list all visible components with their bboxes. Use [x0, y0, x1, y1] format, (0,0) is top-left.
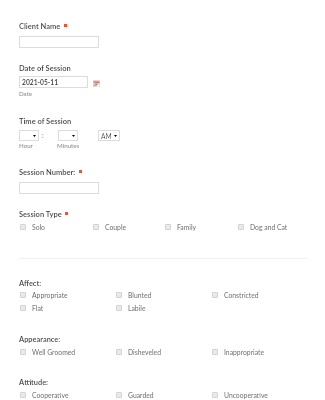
staticText: Dog and Cat [250, 223, 288, 231]
button[interactable]: Well Groomed [20, 348, 76, 356]
staticText: Appropriate [32, 291, 68, 299]
button[interactable]: Dropdown [58, 130, 78, 141]
staticText: Constricted [224, 291, 259, 299]
button[interactable]: Dog and Cat [238, 223, 288, 231]
button[interactable]: Dropdown AM [98, 130, 120, 141]
staticText: Well Groomed [32, 348, 76, 356]
button[interactable]: Uncooperative [212, 391, 268, 399]
button[interactable]: Open calendar picker [93, 80, 100, 87]
staticText: AM [101, 132, 112, 140]
staticText: Disheveled [128, 348, 161, 356]
staticText: Labile [128, 304, 146, 312]
button[interactable]: Cooperative [20, 391, 69, 399]
button[interactable]: Family [165, 223, 197, 231]
button[interactable]: Couple [93, 223, 127, 231]
button[interactable]: Inappropriate [212, 348, 265, 356]
staticText: Guarded [128, 391, 154, 399]
button[interactable]: Solo [20, 223, 45, 231]
staticText: Family [177, 223, 197, 231]
staticText: Inappropriate [224, 348, 265, 356]
staticText: Session Type [19, 210, 62, 219]
staticText: Affect: [19, 279, 42, 288]
button[interactable]: Labile [116, 304, 146, 312]
staticText: Uncooperative [224, 391, 268, 399]
button[interactable]: Text field [19, 182, 99, 194]
button[interactable]: Appropriate [20, 291, 68, 299]
button[interactable]: Guarded [116, 391, 154, 399]
button[interactable]: Blunted [116, 291, 152, 299]
staticText: Flat [32, 304, 44, 312]
staticText: Minutes [57, 142, 80, 149]
button[interactable]: Disheveled [116, 348, 161, 356]
staticText: : [42, 131, 44, 139]
button[interactable]: Dropdown [19, 130, 39, 141]
staticText: Appearance: [19, 335, 61, 344]
button[interactable]: Text field [19, 36, 99, 48]
staticText: Hour [19, 142, 33, 149]
staticText: Client Name [19, 22, 61, 31]
button[interactable]: Flat [20, 304, 44, 312]
staticText: Cooperative [32, 391, 69, 399]
button[interactable]: Text field [19, 76, 88, 88]
staticText: Time of Session [19, 117, 72, 126]
staticText: Date of Session [19, 64, 71, 73]
staticText: Blunted [128, 291, 152, 299]
staticText: Solo [32, 223, 45, 231]
staticText: Date [19, 90, 33, 97]
staticText: Couple [105, 223, 127, 231]
staticText: Attitude: [19, 378, 48, 387]
staticText: Session Number: [19, 168, 76, 177]
staticText: 2021-05-11 [22, 78, 59, 86]
button[interactable]: Constricted [212, 291, 259, 299]
